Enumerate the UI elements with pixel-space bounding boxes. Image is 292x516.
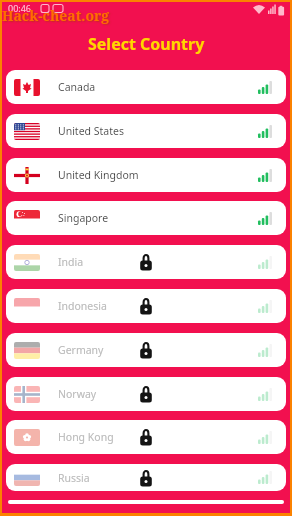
button[interactable]: Hong Kong [6, 420, 286, 454]
staticText: Indonesia [58, 299, 107, 313]
button[interactable]: Singapore [6, 201, 286, 235]
staticText: United States [58, 124, 124, 138]
button[interactable]: Norway [6, 377, 286, 411]
staticText: Hong Kong [58, 430, 114, 444]
staticText: Singapore [58, 211, 109, 225]
button[interactable]: United Kingdom [6, 158, 286, 192]
button[interactable]: United States [6, 114, 286, 148]
staticText: Germany [58, 343, 104, 357]
staticText: Russia [58, 471, 90, 485]
staticText: India [58, 255, 84, 269]
staticText: United Kingdom [58, 168, 139, 182]
staticText: 00:46 [8, 2, 32, 14]
staticText: Canada [58, 80, 96, 94]
staticText: Select Country [88, 33, 205, 55]
button[interactable]: India [6, 245, 286, 279]
staticText: Hack-cheat.org [2, 6, 110, 25]
button[interactable]: Germany [6, 333, 286, 367]
button[interactable]: Canada [6, 70, 286, 104]
button[interactable]: Russia [6, 464, 286, 491]
staticText: Norway [58, 387, 97, 401]
button[interactable]: Indonesia [6, 289, 286, 323]
